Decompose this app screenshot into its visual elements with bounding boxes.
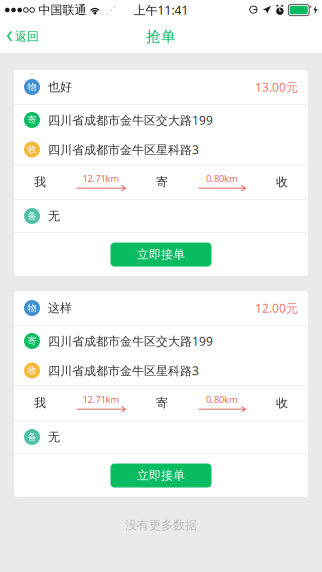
staticText: 四川省成都市金牛区星科路3 (48, 141, 199, 157)
staticText: 抢单 (146, 27, 176, 45)
staticText: 四川省成都市金牛区交大路199 (48, 333, 213, 349)
staticText: 寄 (27, 114, 36, 126)
button[interactable]: 立即接单 (110, 463, 211, 487)
staticText: 上午11:41 (133, 2, 188, 18)
staticText: 0.80km (206, 393, 238, 406)
staticText: 物 (27, 302, 36, 314)
staticText: 0.80km (206, 172, 238, 185)
staticText: 这样 (48, 301, 72, 315)
staticText: 寄 (156, 396, 168, 410)
staticText: 13.00元 (255, 79, 298, 95)
staticText: 立即接单 (137, 247, 185, 262)
staticText: 收 (27, 144, 36, 155)
staticText: 四川省成都市金牛区星科路3 (48, 362, 199, 378)
staticText: 无 (48, 209, 60, 223)
staticText: 12.00元 (255, 300, 298, 316)
staticText: 备 (27, 431, 36, 443)
staticText: 收 (276, 175, 288, 189)
staticText: 四川省成都市金牛区交大路199 (48, 112, 213, 128)
button[interactable]: 返回 (0, 20, 45, 53)
staticText: 寄 (27, 335, 36, 347)
staticText: 我 (34, 175, 46, 189)
staticText: 物 (27, 81, 36, 93)
staticText: 备 (27, 210, 36, 222)
staticText: 也好 (48, 80, 72, 94)
staticText: 我 (34, 396, 46, 410)
staticText: 12.71km (82, 393, 119, 406)
staticText: 寄 (156, 175, 168, 189)
staticText: 返回 (15, 29, 39, 44)
staticText: 收 (276, 396, 288, 410)
button[interactable]: 立即接单 (110, 242, 211, 266)
staticText: 中国联通 (38, 3, 86, 17)
staticText: 没有更多数据 (125, 518, 197, 533)
staticText: 12.71km (82, 172, 119, 185)
staticText: 立即接单 (137, 468, 185, 483)
staticText: 收 (27, 365, 36, 376)
staticText: ⋰ (105, 4, 116, 16)
staticText: 无 (48, 430, 60, 444)
